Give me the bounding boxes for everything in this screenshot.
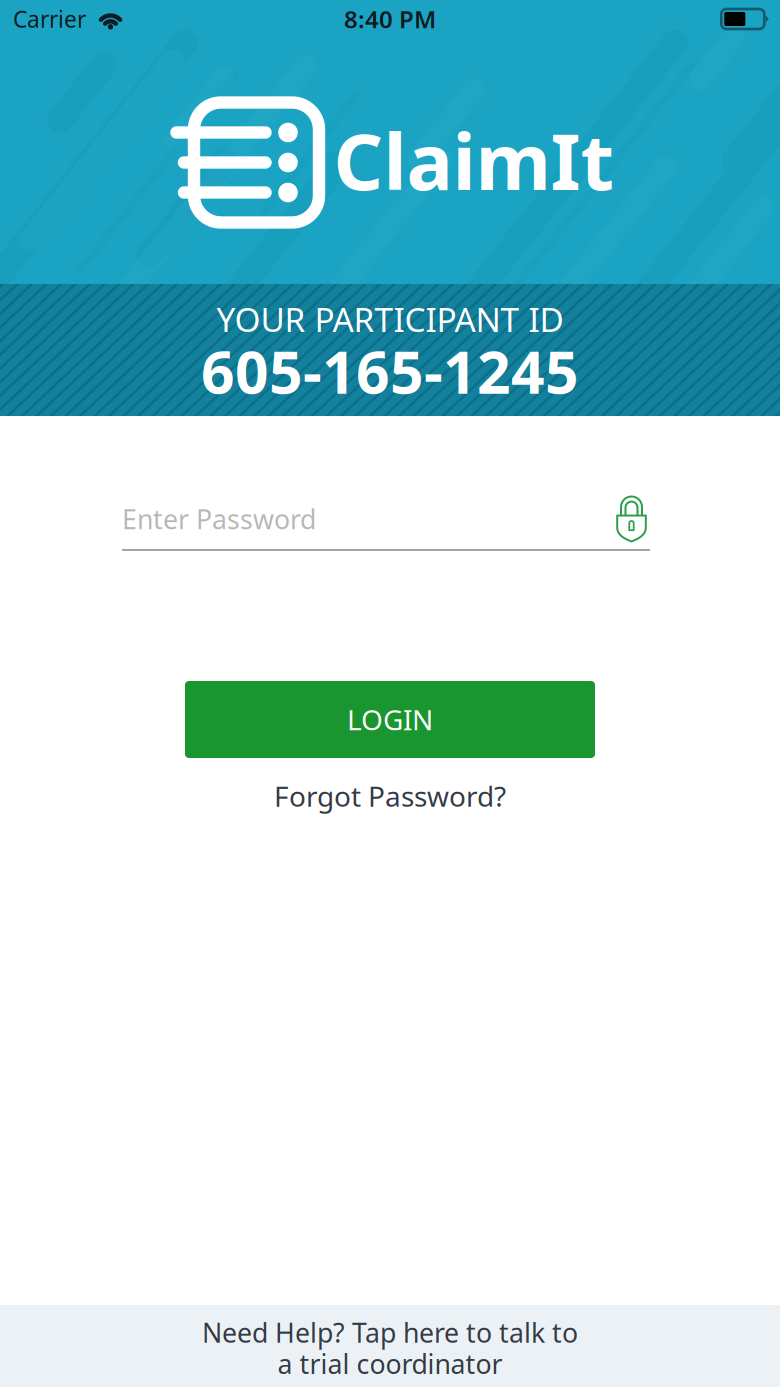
staticText: a trial coordinator [277,1346,502,1381]
staticText: Carrier [13,4,86,34]
staticText: Forgot Password? [274,777,506,815]
staticText: Enter Password [122,501,316,537]
button[interactable]: LOGIN [185,681,595,758]
staticText: YOUR PARTICIPANT ID [216,297,563,341]
staticText: ClaimIt [333,109,614,211]
staticText: LOGIN [347,701,433,738]
staticText: 605-165-1245 [201,332,579,410]
button[interactable]: Forgot Password? [244,758,536,834]
staticText: 8:40 PM [344,3,436,35]
button[interactable]: Need Help? Tap here to talk to [0,1305,780,1387]
staticText: Need Help? Tap here to talk to [202,1315,578,1350]
